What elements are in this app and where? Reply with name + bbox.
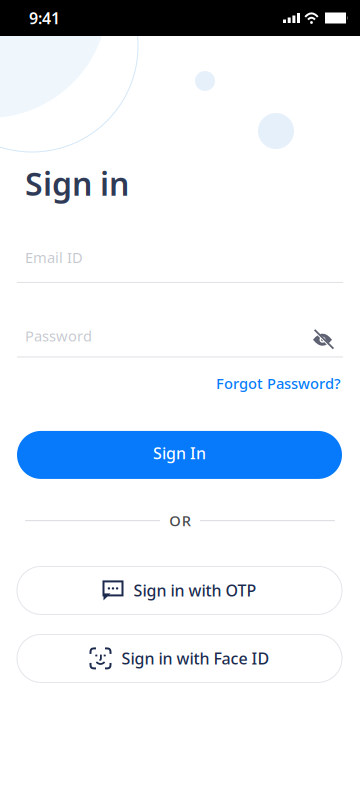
staticText: OR	[169, 511, 191, 530]
staticText: Email ID	[25, 247, 83, 267]
button[interactable]: Sign in with Face ID	[17, 634, 342, 682]
staticText: Sign in with Face ID	[121, 648, 269, 669]
staticText: 9:41	[29, 7, 60, 29]
staticText: Password	[25, 326, 92, 345]
button[interactable]: Forgot Password?	[216, 373, 341, 393]
staticText: Sign in with OTP	[133, 580, 256, 601]
staticText: Forgot Password?	[216, 373, 341, 393]
button[interactable]: Show password	[313, 333, 333, 346]
staticText: Sign in	[25, 162, 129, 204]
button[interactable]: Sign in with OTP	[17, 566, 342, 614]
staticText: Sign In	[153, 442, 206, 463]
button[interactable]: Sign In	[17, 431, 342, 479]
